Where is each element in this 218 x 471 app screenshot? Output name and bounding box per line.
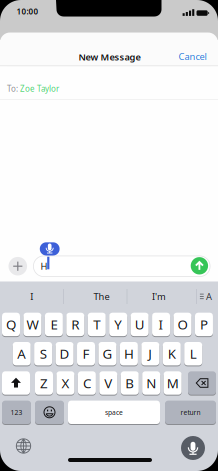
button[interactable]: V xyxy=(99,371,117,395)
staticText: O xyxy=(177,315,187,333)
staticText: return xyxy=(180,408,200,417)
button[interactable]: Predictions xyxy=(199,290,213,302)
button[interactable]: Next keyboard xyxy=(15,438,31,454)
button[interactable]: H xyxy=(120,342,138,365)
button[interactable]: space xyxy=(68,401,160,424)
staticText: 123 xyxy=(10,408,22,417)
staticText: D xyxy=(60,345,70,362)
staticText: L xyxy=(190,345,197,362)
button[interactable]: D xyxy=(56,342,74,365)
staticText: space xyxy=(105,408,123,417)
staticText: Z xyxy=(40,374,48,392)
staticText: Q xyxy=(6,315,16,333)
staticText: B xyxy=(125,374,134,392)
staticText: G xyxy=(102,345,112,362)
button[interactable]: M xyxy=(164,371,182,395)
button[interactable]: Delete xyxy=(188,371,216,395)
staticText: Zoe Taylor xyxy=(20,83,59,94)
button[interactable]: K xyxy=(163,342,181,365)
button[interactable]: return xyxy=(165,401,216,424)
staticText: I xyxy=(159,315,164,333)
button[interactable]: U xyxy=(131,313,149,336)
staticText: N xyxy=(146,374,156,392)
button[interactable]: A xyxy=(13,342,31,365)
button[interactable]: T xyxy=(88,313,106,336)
staticText: E xyxy=(50,315,57,333)
staticText: X xyxy=(61,374,69,392)
button[interactable]: I'm xyxy=(127,286,191,307)
button[interactable]: X xyxy=(56,371,74,395)
button[interactable]: J xyxy=(141,342,159,365)
button[interactable]: Q xyxy=(2,313,20,336)
staticText: M xyxy=(167,374,179,392)
button[interactable]: Y xyxy=(109,313,127,336)
staticText: K xyxy=(168,345,176,362)
staticText: H xyxy=(124,345,134,362)
staticText: T xyxy=(93,315,100,333)
staticText: A xyxy=(17,345,26,362)
button[interactable]: P xyxy=(195,313,213,336)
staticText: New Message xyxy=(78,51,140,63)
staticText: V xyxy=(104,374,112,392)
button[interactable]: S xyxy=(34,342,52,365)
button[interactable]: Shift xyxy=(2,371,30,395)
staticText: I xyxy=(30,290,33,302)
button[interactable]: O xyxy=(173,313,191,336)
button[interactable]: Send xyxy=(191,257,208,274)
button[interactable]: Dictate xyxy=(181,436,205,460)
button[interactable]: Cancel xyxy=(172,46,212,66)
button[interactable]: Apps xyxy=(8,257,27,275)
button[interactable]: R xyxy=(66,313,84,336)
staticText: To: xyxy=(7,83,20,94)
button[interactable]: N xyxy=(142,371,160,395)
staticText: J xyxy=(148,345,152,362)
button[interactable]: To: xyxy=(0,77,218,101)
staticText: Cancel xyxy=(178,50,206,63)
staticText: 10:00 xyxy=(16,6,38,17)
staticText: Y xyxy=(114,315,122,333)
staticText: P xyxy=(200,315,208,333)
button[interactable]: L xyxy=(184,342,202,365)
button[interactable]: I xyxy=(2,286,62,307)
button[interactable]: F xyxy=(77,342,95,365)
button[interactable]: Emoji xyxy=(35,401,64,424)
staticText: H xyxy=(40,260,47,272)
button[interactable]: The xyxy=(71,286,131,307)
staticText: A xyxy=(206,290,212,302)
button[interactable]: Z xyxy=(35,371,53,395)
staticText: F xyxy=(82,345,89,362)
staticText: I'm xyxy=(152,290,166,302)
staticText: W xyxy=(26,315,38,333)
staticText: U xyxy=(135,315,145,333)
staticText: The xyxy=(93,290,109,302)
button[interactable]: 123 xyxy=(2,401,31,424)
staticText: S xyxy=(40,345,47,362)
staticText: C xyxy=(83,374,91,392)
button[interactable]: W xyxy=(23,313,41,336)
button[interactable]: E xyxy=(45,313,63,336)
button[interactable]: G xyxy=(98,342,116,365)
button[interactable]: I xyxy=(152,313,170,336)
staticText: R xyxy=(71,315,79,333)
button[interactable]: C xyxy=(78,371,96,395)
button[interactable]: B xyxy=(121,371,139,395)
